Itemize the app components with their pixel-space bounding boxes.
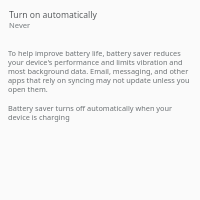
staticText: Never bbox=[9, 20, 31, 30]
staticText: Turn on automatically bbox=[9, 9, 97, 21]
staticText: Battery saver turns off automatically wh… bbox=[8, 103, 194, 123]
staticText: To help improve battery life, battery sa… bbox=[8, 48, 194, 95]
button[interactable]: Turn on automatically bbox=[0, 7, 200, 33]
